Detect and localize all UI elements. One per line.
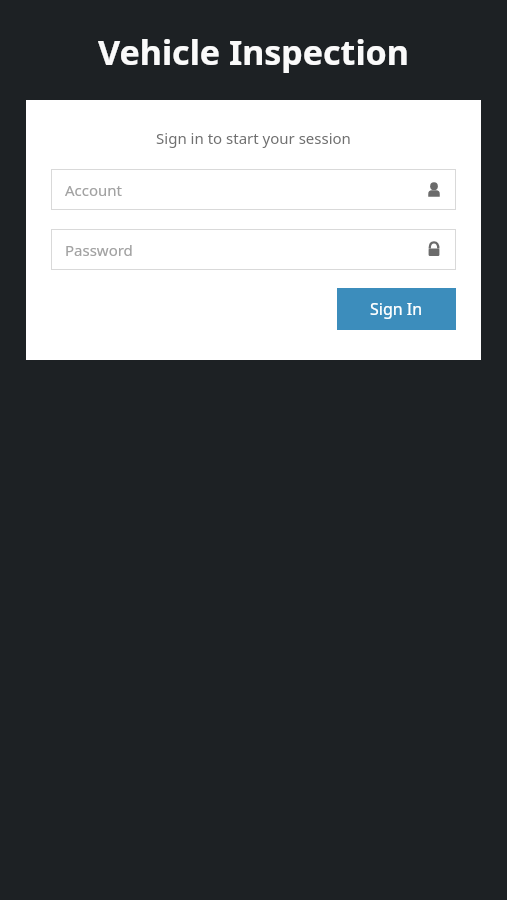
button[interactable]: Password <box>51 229 456 270</box>
staticText: Password <box>65 240 425 260</box>
staticText: Sign In <box>370 298 423 320</box>
button[interactable]: Sign In <box>337 288 456 330</box>
staticText: Vehicle Inspection <box>0 29 507 75</box>
button[interactable]: Account <box>51 169 456 210</box>
other: Password <box>425 241 443 259</box>
other: Account <box>425 181 443 199</box>
staticText: Sign in to start your session <box>26 128 481 148</box>
staticText: Account <box>65 180 425 200</box>
